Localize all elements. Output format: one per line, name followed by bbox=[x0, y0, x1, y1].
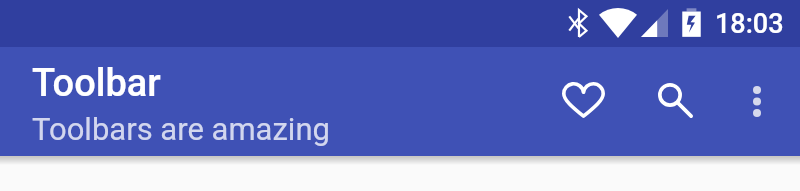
staticText: Toolbars are amazing bbox=[32, 111, 330, 147]
button[interactable]: Favorite bbox=[541, 58, 625, 142]
staticText: Toolbar bbox=[32, 61, 161, 106]
button[interactable]: More options bbox=[715, 58, 799, 142]
staticText: 18:03 bbox=[715, 8, 784, 40]
button[interactable]: Search bbox=[633, 58, 717, 142]
